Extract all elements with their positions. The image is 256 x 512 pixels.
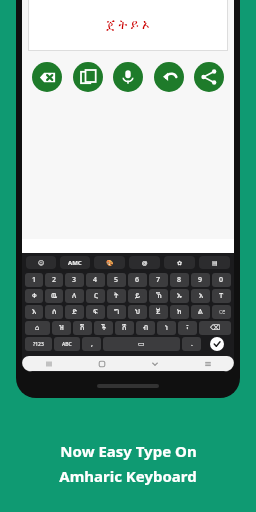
button[interactable]: ⌂ (25, 321, 50, 335)
button[interactable]: ABC (54, 337, 80, 351)
button[interactable]: ፐ (212, 289, 231, 303)
staticText: ት (114, 291, 119, 301)
button[interactable]: ዝ (52, 321, 71, 335)
staticText: Now Easy Type On (60, 441, 197, 461)
button[interactable]: ⌫ (199, 321, 231, 335)
staticText: ግ (114, 307, 120, 317)
staticText: 🎨 (106, 259, 114, 266)
staticText: 1 (32, 275, 37, 285)
staticText: AMC (68, 259, 82, 267)
staticText: ነ (165, 323, 168, 333)
button[interactable]: ይ (128, 289, 147, 303)
staticText: 6 (135, 275, 140, 285)
staticText: ቀ (32, 291, 37, 301)
staticText: ኸ (156, 291, 162, 301)
button[interactable]: 7 (149, 273, 168, 287)
button[interactable]: 🎨 (94, 256, 125, 269)
button[interactable]: ኸ (149, 289, 168, 303)
staticText: 3 (72, 275, 77, 285)
button[interactable]: Backspace (32, 62, 62, 92)
staticText: Amharic Keyboard (59, 466, 197, 486)
button[interactable]: ች (94, 321, 113, 335)
button[interactable]: Enter (210, 337, 224, 351)
staticText: ፣ (186, 323, 189, 333)
button[interactable]: Home (75, 356, 128, 371)
button[interactable]: @ (129, 256, 160, 269)
button[interactable]: እ (25, 305, 43, 319)
button[interactable]: 0 (212, 273, 231, 287)
staticText: ጀ (156, 307, 161, 317)
button[interactable]: Recents (22, 356, 75, 371)
button[interactable]: ሰ (45, 305, 63, 319)
button[interactable]: ▤ (199, 256, 230, 269)
staticText: ዝ (59, 323, 64, 333)
button[interactable]: ድ (65, 305, 84, 319)
staticText: ⌫ (210, 324, 220, 332)
button[interactable]: AMC (60, 256, 90, 269)
button[interactable]: , (82, 337, 101, 351)
button[interactable]: Share (194, 62, 224, 92)
button[interactable]: ብ (136, 321, 155, 335)
staticText: ▤ (212, 259, 218, 266)
staticText: 7 (156, 275, 161, 285)
staticText: ?123 (33, 341, 44, 348)
staticText: ABC (62, 341, 72, 348)
staticText: ክ (177, 307, 182, 317)
button[interactable]: ት (107, 289, 126, 303)
button[interactable]: ር (86, 289, 105, 303)
button[interactable]: ▭ (103, 337, 180, 351)
staticText: ✿ (177, 259, 183, 266)
staticText: ኡ (177, 291, 182, 301)
staticText: 2 (52, 275, 57, 285)
button[interactable]: ጀ (149, 305, 168, 319)
button[interactable]: ሸ (115, 321, 134, 335)
button[interactable]: ነ (157, 321, 176, 335)
button[interactable]: ः (212, 305, 231, 319)
staticText: ሸ (122, 323, 127, 333)
button[interactable]: 1 (25, 273, 43, 287)
staticText: ል (198, 307, 203, 317)
button[interactable]: Keyboard options (181, 356, 234, 371)
staticText: ይ (135, 291, 141, 301)
button[interactable]: ቀ (25, 289, 43, 303)
button[interactable]: 6 (128, 273, 147, 287)
button[interactable]: ?123 (25, 337, 52, 351)
staticText: ⌂ (35, 324, 40, 332)
button[interactable]: . (182, 337, 201, 351)
staticText: ፐ (219, 291, 224, 301)
button[interactable]: 8 (170, 273, 189, 287)
staticText: ▭ (138, 340, 145, 348)
button[interactable]: ል (191, 305, 210, 319)
button[interactable]: ክ (170, 305, 189, 319)
button[interactable]: Voice input (113, 62, 143, 92)
staticText: ☺ (38, 259, 45, 266)
staticText: ህ (135, 307, 141, 317)
button[interactable]: 9 (191, 273, 210, 287)
button[interactable]: ግ (107, 305, 126, 319)
button[interactable]: ዉ (45, 289, 63, 303)
button[interactable]: 3 (65, 273, 84, 287)
staticText: 5 (114, 275, 119, 285)
button[interactable]: ሽ (73, 321, 92, 335)
button[interactable]: Undo (154, 62, 184, 92)
button[interactable]: ☺ (26, 256, 56, 269)
button[interactable]: ፣ (178, 321, 197, 335)
staticText: 8 (177, 275, 182, 285)
staticText: 4 (93, 275, 98, 285)
button[interactable]: አ (191, 289, 210, 303)
button[interactable]: ✿ (164, 256, 195, 269)
staticText: ሰ (52, 307, 57, 317)
staticText: ዉ (51, 291, 58, 301)
button[interactable]: Back (128, 356, 181, 371)
button[interactable]: ህ (128, 305, 147, 319)
staticText: 0 (219, 275, 224, 285)
staticText: ድ (72, 307, 78, 317)
button[interactable]: 4 (86, 273, 105, 287)
button[interactable]: ፍ (86, 305, 105, 319)
button[interactable]: ኡ (170, 289, 189, 303)
button[interactable]: 2 (45, 273, 63, 287)
button[interactable]: 5 (107, 273, 126, 287)
button[interactable]: ለ (65, 289, 84, 303)
staticText: ር (94, 291, 98, 301)
button[interactable]: Copy (73, 62, 103, 92)
